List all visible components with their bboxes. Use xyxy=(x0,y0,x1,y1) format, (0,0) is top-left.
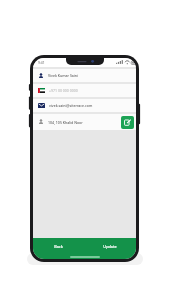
staticText: Back xyxy=(54,244,63,249)
button[interactable]: vivek.saini@siterrace.com xyxy=(33,99,136,112)
button[interactable]: Vivek Kumar Saini xyxy=(33,69,136,82)
staticText: 9:41 xyxy=(38,60,45,65)
staticText: vivek.saini@siterrace.com xyxy=(49,103,93,108)
button[interactable]: Update xyxy=(84,238,136,254)
staticText: +971 00 000 0000 xyxy=(49,88,78,93)
staticText: Vivek Kumar Saini xyxy=(48,73,78,78)
staticText: 104, 105 Khalid Noor xyxy=(48,120,83,125)
staticText: Update xyxy=(103,244,117,249)
button[interactable]: Back xyxy=(33,238,84,254)
button[interactable]: 104, 105 Khalid Noor xyxy=(33,114,121,130)
button[interactable]: +971 00 000 0000 xyxy=(33,84,136,97)
button[interactable]: Edit address xyxy=(121,116,134,129)
